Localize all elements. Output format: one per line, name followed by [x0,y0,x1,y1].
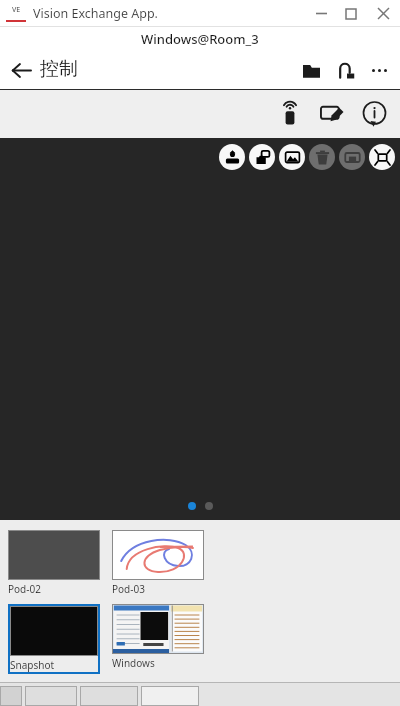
button[interactable]: More options [362,53,396,87]
button[interactable]: Pod-03 [112,530,204,596]
staticText: Pod-03 [112,582,145,596]
button[interactable]: Pod-02 [8,530,100,596]
staticText: Vision Exchange App. [33,5,158,22]
button[interactable]: Present [219,144,245,170]
staticText: Snapshot [10,658,55,672]
staticText: Windows@Room_3 [141,30,259,48]
button[interactable]: Annotate [314,96,350,132]
button[interactable]: Windows [112,604,204,670]
staticText: Windows [112,656,155,670]
staticText: Pod-02 [8,582,41,596]
button[interactable]: Connect [328,53,362,87]
button[interactable]: Maximize [336,0,366,27]
staticText: VE [12,5,21,15]
button[interactable]: Image [279,144,305,170]
staticText: 控制 [40,57,78,81]
button[interactable]: Information [356,96,392,132]
button[interactable]: Capture [249,144,275,170]
button[interactable]: Remote control [272,96,308,132]
button[interactable]: Minimize [306,0,336,27]
button[interactable]: Snapshot [8,604,100,674]
button[interactable]: Close [366,0,400,27]
button[interactable]: Delete [309,144,335,170]
button[interactable]: Full screen [369,144,395,170]
button[interactable]: Folder [294,53,328,87]
button[interactable]: 控制 [4,53,78,87]
button[interactable]: Archive [339,144,365,170]
